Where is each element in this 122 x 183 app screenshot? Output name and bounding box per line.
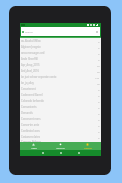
button[interactable]: be just schew ceporate conto xyxy=(20,74,101,80)
button[interactable]: Colorado beforedo xyxy=(20,98,101,104)
staticText: Search xyxy=(25,30,33,33)
staticText: 0 xyxy=(98,52,100,55)
staticText: Cosseterant xyxy=(21,87,36,91)
staticText: Ard_Anel_2016 xyxy=(21,69,39,73)
button[interactable]: Contacts xyxy=(47,142,74,150)
button[interactable]: Ande Sheeffill xyxy=(20,56,101,62)
staticText: be just schew ceporate conto xyxy=(21,75,57,79)
staticText: Concesent nons xyxy=(21,117,41,121)
staticText: Ande Sheeffill xyxy=(21,57,38,61)
staticText: 0 xyxy=(98,94,100,97)
button[interactable]: Concesent nons xyxy=(20,116,101,122)
button[interactable]: Comunicerts xyxy=(20,104,101,110)
staticText: 0 xyxy=(98,106,100,109)
staticText: Algicom Jeognio xyxy=(21,45,41,49)
staticText: 0 xyxy=(98,100,100,103)
staticText: Apr_Arup_2015 xyxy=(21,63,40,67)
staticText: Converter ante xyxy=(21,123,40,127)
button[interactable]: Converter ante xyxy=(20,122,101,128)
staticText: 0 xyxy=(98,130,100,133)
button[interactable]: Cordinatol aces xyxy=(20,128,101,134)
staticText: Colorado beforedo xyxy=(21,99,44,103)
button[interactable]: Recents xyxy=(76,150,82,156)
staticText: Costanero lates xyxy=(21,135,40,139)
button[interactable]: Algicom Jeognio xyxy=(20,44,101,50)
staticText: 0 xyxy=(98,46,100,49)
staticText: 0 xyxy=(98,118,100,121)
button[interactable]: Costanero lates xyxy=(20,134,101,140)
staticText: 0 xyxy=(98,40,100,43)
button[interactable]: Home xyxy=(58,150,64,156)
staticText: be_ja_alizy xyxy=(21,81,34,85)
button[interactable]: Search xyxy=(21,27,100,36)
staticText: Inbox xyxy=(31,147,37,150)
button[interactable]: anca messages ord xyxy=(20,50,101,56)
button[interactable]: au Abudul Wilsa xyxy=(20,38,101,44)
staticText: Crazone Belesco xyxy=(21,140,41,142)
staticText: 93 xyxy=(97,70,100,73)
button[interactable]: Codenered Barrel xyxy=(20,92,101,98)
button[interactable]: Settings xyxy=(74,142,101,150)
button[interactable]: Crazone Belesco xyxy=(20,140,101,142)
staticText: anca messages ord xyxy=(21,51,45,55)
button[interactable]: Apr_Arup_2015 xyxy=(20,62,101,68)
staticText: 0 xyxy=(98,124,100,127)
staticText: Comunicerts xyxy=(21,105,37,109)
staticText: au Abudul Wilsa xyxy=(21,39,41,43)
button[interactable]: Cosseterant xyxy=(20,86,101,92)
staticText: Codenered Barrel xyxy=(21,93,43,97)
staticText: 0 xyxy=(98,88,100,91)
staticText: 0 xyxy=(98,58,100,61)
staticText: 52 xyxy=(97,64,100,67)
staticText: 0 xyxy=(98,136,100,139)
staticText: Contacts xyxy=(56,147,65,150)
staticText: 142 xyxy=(95,76,100,79)
staticText: Settings xyxy=(84,147,92,150)
button[interactable]: Ard_Anel_2016 xyxy=(20,68,101,74)
button[interactable]: Back xyxy=(40,150,46,156)
staticText: 45 xyxy=(97,82,100,85)
staticText: Cordinatol aces xyxy=(21,129,40,133)
button[interactable]: Demands xyxy=(20,110,101,116)
staticText: Demands xyxy=(21,111,33,115)
staticText: 0 xyxy=(98,112,100,115)
button[interactable]: Inbox xyxy=(20,142,47,150)
button[interactable]: be_ja_alizy xyxy=(20,80,101,86)
